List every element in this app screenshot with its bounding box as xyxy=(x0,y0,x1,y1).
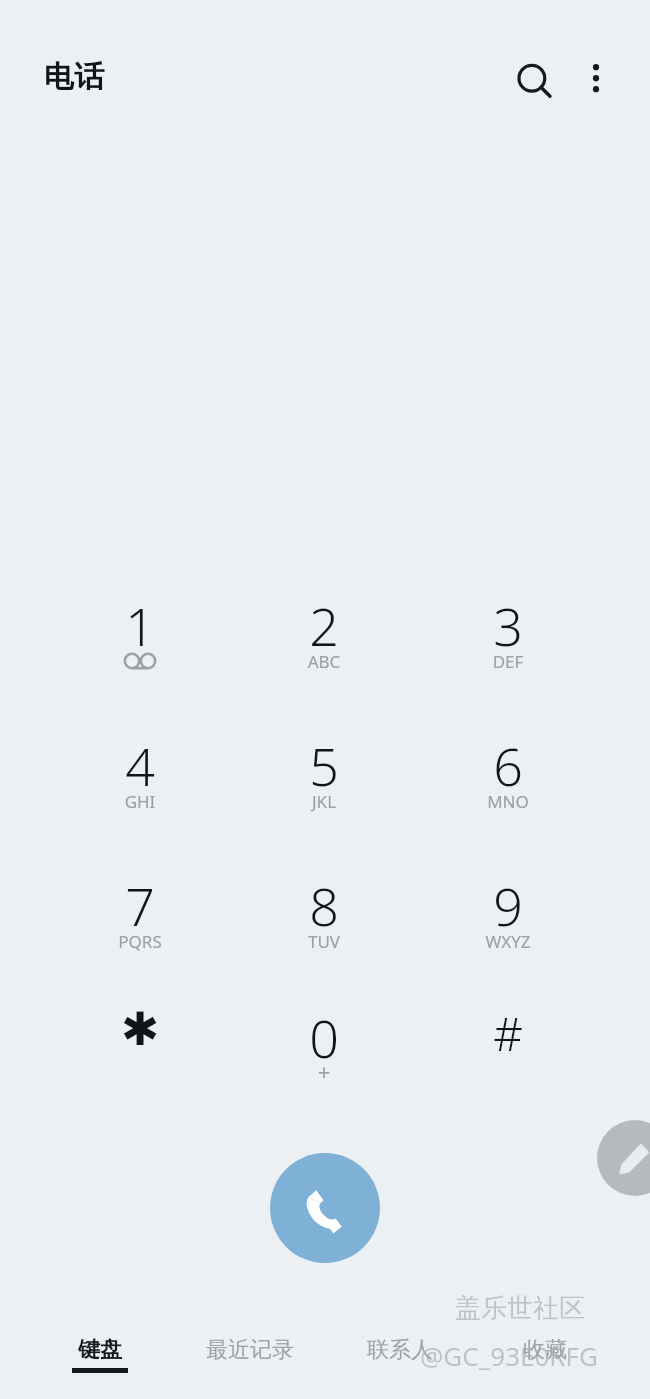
staticText: MNO xyxy=(433,790,583,930)
button[interactable]: Call xyxy=(270,1153,380,1263)
staticText: 5 xyxy=(249,730,399,870)
button[interactable]: 9 xyxy=(433,862,583,1002)
staticText: 9 xyxy=(433,870,583,1010)
staticText: 键盘 xyxy=(78,1336,122,1364)
button[interactable]: 联系人 xyxy=(325,1318,475,1390)
staticText: DEF xyxy=(433,650,583,790)
staticText: 联系人 xyxy=(367,1336,433,1364)
button[interactable]: 最近记录 xyxy=(175,1318,325,1390)
staticText: JKL xyxy=(249,790,399,930)
button[interactable]: 0 xyxy=(249,994,399,1134)
staticText: + xyxy=(249,1056,399,1196)
button[interactable]: 收藏 xyxy=(470,1318,620,1390)
button[interactable]: 7 xyxy=(65,862,215,1002)
button[interactable]: ✱ xyxy=(65,994,215,1134)
staticText: GHI xyxy=(65,790,215,930)
button[interactable]: 4 xyxy=(65,722,215,862)
staticText: 4 xyxy=(65,730,215,870)
button[interactable]: # xyxy=(433,994,583,1134)
staticText: 7 xyxy=(65,870,215,1010)
staticText: WXYZ xyxy=(433,930,583,1070)
staticText: 最近记录 xyxy=(206,1336,294,1364)
staticText: 收藏 xyxy=(523,1336,567,1364)
staticText: 盖乐世社区 xyxy=(455,1292,585,1325)
button[interactable]: Search xyxy=(505,53,561,109)
staticText: ABC xyxy=(249,650,399,790)
staticText: TUV xyxy=(249,930,399,1070)
staticText: 电话 xyxy=(44,58,104,96)
staticText: 1 xyxy=(65,590,215,730)
staticText: 8 xyxy=(249,870,399,1010)
button[interactable]: 1 xyxy=(65,582,215,722)
staticText: 3 xyxy=(433,590,583,730)
button[interactable]: More options xyxy=(571,53,621,109)
button[interactable]: 6 xyxy=(433,722,583,862)
staticText: ✱ xyxy=(65,1002,215,1142)
button[interactable]: Edit xyxy=(597,1120,650,1196)
button[interactable]: 2 xyxy=(249,582,399,722)
staticText: @GC_93E0RFG xyxy=(420,1338,598,1373)
staticText: 6 xyxy=(433,730,583,870)
staticText: 0 xyxy=(249,1002,399,1142)
button[interactable]: 3 xyxy=(433,582,583,722)
staticText: PQRS xyxy=(65,930,215,1070)
staticText: # xyxy=(433,1002,583,1142)
staticText: 2 xyxy=(249,590,399,730)
button[interactable]: 8 xyxy=(249,862,399,1002)
button[interactable]: 键盘 xyxy=(25,1318,175,1390)
button[interactable]: 5 xyxy=(249,722,399,862)
